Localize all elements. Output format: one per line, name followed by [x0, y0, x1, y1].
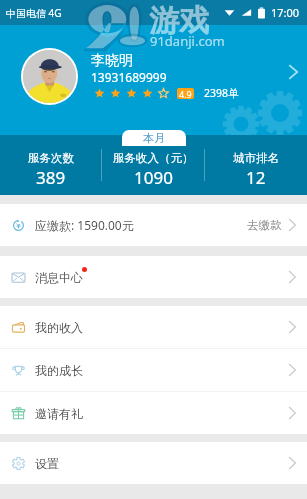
staticText: 91danji.com — [150, 32, 225, 50]
staticText: 17:00 — [271, 5, 300, 20]
button[interactable]: 李晓明 — [0, 25, 307, 135]
button[interactable]: 我的成长 — [0, 349, 307, 391]
button[interactable]: 消息中心 — [0, 256, 307, 298]
button[interactable]: 我的收入 — [0, 306, 307, 348]
button[interactable]: 应缴款: 1590.00元 — [0, 204, 307, 246]
staticText: 服务收入（元） — [113, 151, 194, 165]
staticText: 去缴款 — [247, 218, 282, 232]
staticText: 城市排名 — [233, 151, 279, 165]
staticText: 我的收入 — [35, 320, 83, 335]
button[interactable]: Profile details — [283, 62, 303, 82]
button[interactable]: 服务次数 — [0, 135, 101, 195]
staticText: 13931689999 — [91, 69, 167, 85]
staticText: 游戏 — [149, 2, 209, 40]
staticText: 设置 — [35, 456, 59, 471]
staticText: 389 — [36, 166, 66, 189]
staticText: 1090 — [134, 166, 173, 189]
staticText: 4.9 — [179, 88, 192, 99]
staticText: 我的成长 — [35, 363, 83, 378]
staticText: 李晓明 — [91, 52, 133, 70]
staticText: 12 — [246, 166, 266, 189]
staticText: 邀请有礼 — [35, 406, 83, 421]
staticText: 2398单 — [204, 86, 239, 100]
button[interactable]: 服务收入（元） — [102, 135, 204, 195]
button[interactable]: 邀请有礼 — [0, 392, 307, 434]
staticText: 应缴款: 1590.00元 — [35, 217, 134, 233]
button[interactable]: 本月 — [122, 130, 186, 146]
staticText: 服务次数 — [28, 151, 74, 165]
button[interactable]: 设置 — [0, 442, 307, 484]
staticText: 消息中心 — [35, 270, 83, 285]
staticText: 本月 — [143, 131, 165, 145]
staticText: 中国电信 4G — [6, 6, 62, 20]
button[interactable]: 城市排名 — [205, 135, 307, 195]
